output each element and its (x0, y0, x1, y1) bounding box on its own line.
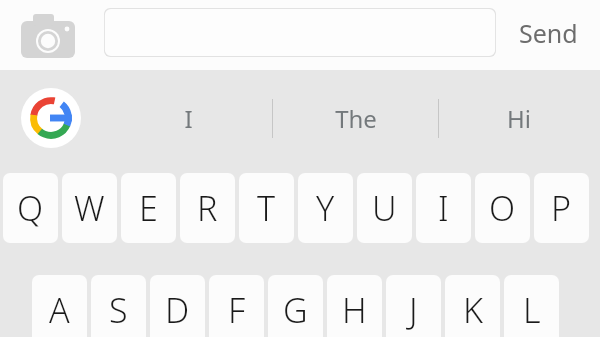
staticText: F (228, 287, 246, 333)
staticText: W (74, 185, 105, 231)
button[interactable]: W (62, 173, 117, 243)
staticText: H (342, 287, 367, 333)
button[interactable]: P (534, 173, 589, 243)
staticText: I (438, 185, 449, 231)
button[interactable]: The (273, 88, 438, 148)
staticText: A (49, 287, 70, 333)
staticText: S (109, 287, 128, 333)
button[interactable]: A (32, 275, 87, 337)
button[interactable]: L (504, 275, 559, 337)
button[interactable]: I (416, 173, 471, 243)
staticText: D (165, 287, 190, 333)
staticText: L (523, 287, 541, 333)
button[interactable]: Y (298, 173, 353, 243)
button[interactable]: G (268, 275, 323, 337)
button[interactable]: H (327, 275, 382, 337)
staticText: Hi (507, 102, 531, 135)
button[interactable]: R (180, 173, 235, 243)
button[interactable]: U (357, 173, 412, 243)
button[interactable]: Take photo (16, 6, 80, 64)
button[interactable]: Hi (440, 88, 598, 148)
staticText: E (139, 185, 158, 231)
staticText: Q (17, 185, 44, 231)
button[interactable] (104, 8, 496, 57)
button[interactable]: T (239, 173, 294, 243)
button[interactable]: O (475, 173, 530, 243)
button[interactable]: S (91, 275, 146, 337)
button[interactable]: F (209, 275, 264, 337)
button[interactable]: J (386, 275, 441, 337)
button[interactable]: E (121, 173, 176, 243)
staticText: R (197, 185, 218, 231)
button[interactable]: Google (21, 88, 81, 148)
staticText: I (184, 102, 193, 135)
staticText: O (489, 185, 516, 231)
button[interactable]: Q (3, 173, 58, 243)
button[interactable]: K (445, 275, 500, 337)
staticText: K (463, 287, 483, 333)
staticText: The (335, 102, 377, 135)
staticText: U (372, 185, 397, 231)
staticText: P (551, 185, 572, 231)
button[interactable]: D (150, 275, 205, 337)
button[interactable]: I (104, 88, 272, 148)
staticText: G (283, 287, 308, 333)
staticText: Send (519, 16, 578, 50)
button[interactable]: Send (500, 8, 596, 58)
staticText: J (409, 287, 418, 333)
staticText: T (257, 185, 276, 231)
staticText: Y (316, 185, 335, 231)
